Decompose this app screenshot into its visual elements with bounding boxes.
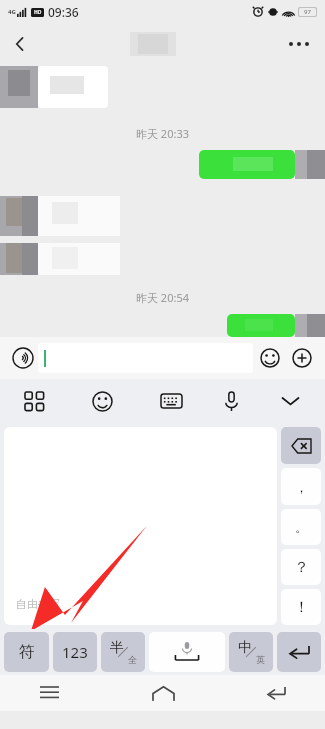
button[interactable]: Enter xyxy=(277,632,321,672)
button[interactable]: Space xyxy=(149,632,225,672)
staticText: ！ xyxy=(294,598,309,617)
button[interactable]: Back xyxy=(0,24,40,64)
staticText: 09:36 xyxy=(48,4,79,20)
button[interactable]: Recent apps xyxy=(26,675,72,711)
staticText: 全 xyxy=(128,654,137,665)
button[interactable]: Backspace xyxy=(281,427,321,464)
button[interactable]: 符 xyxy=(4,632,49,672)
button[interactable]: Emoji xyxy=(253,341,287,375)
button[interactable]: Back xyxy=(253,675,299,711)
button[interactable]: Keyboard modes xyxy=(0,379,68,423)
staticText: 。 xyxy=(295,519,308,535)
staticText: 昨天 20:54 xyxy=(136,290,189,305)
staticText: 4G xyxy=(8,8,16,16)
staticText: 半 xyxy=(110,639,124,657)
button[interactable]: 半 xyxy=(101,632,145,672)
staticText: HD xyxy=(34,9,42,16)
staticText: 符 xyxy=(19,642,35,662)
button[interactable]: Keyboard xyxy=(137,379,206,423)
button[interactable]: ？ xyxy=(281,549,321,585)
button[interactable]: ！ xyxy=(281,589,321,625)
button[interactable]: 123 xyxy=(53,632,97,672)
staticText: 123 xyxy=(62,642,88,662)
staticText: 英 xyxy=(256,654,265,665)
staticText: 自由书写 xyxy=(16,597,60,611)
button[interactable]: Emoji xyxy=(68,379,137,423)
button[interactable]: Hide keyboard xyxy=(256,379,325,423)
staticText: 中 xyxy=(238,639,252,657)
button[interactable]: 。 xyxy=(281,509,321,545)
button[interactable]: Voice input xyxy=(8,343,38,373)
staticText: 昨天 20:33 xyxy=(136,126,189,141)
button[interactable]: 中 xyxy=(229,632,273,672)
button[interactable]: More options xyxy=(283,28,315,60)
button[interactable]: More functions xyxy=(287,343,317,373)
button[interactable]: Home xyxy=(140,675,186,711)
staticText: 97 xyxy=(304,8,311,16)
staticText: ？ xyxy=(294,558,309,577)
button[interactable]: Voice xyxy=(206,379,256,423)
button[interactable]: ， xyxy=(281,468,321,505)
button[interactable]: Handwriting area xyxy=(4,427,277,625)
button[interactable] xyxy=(38,343,253,373)
staticText: ， xyxy=(295,479,308,495)
